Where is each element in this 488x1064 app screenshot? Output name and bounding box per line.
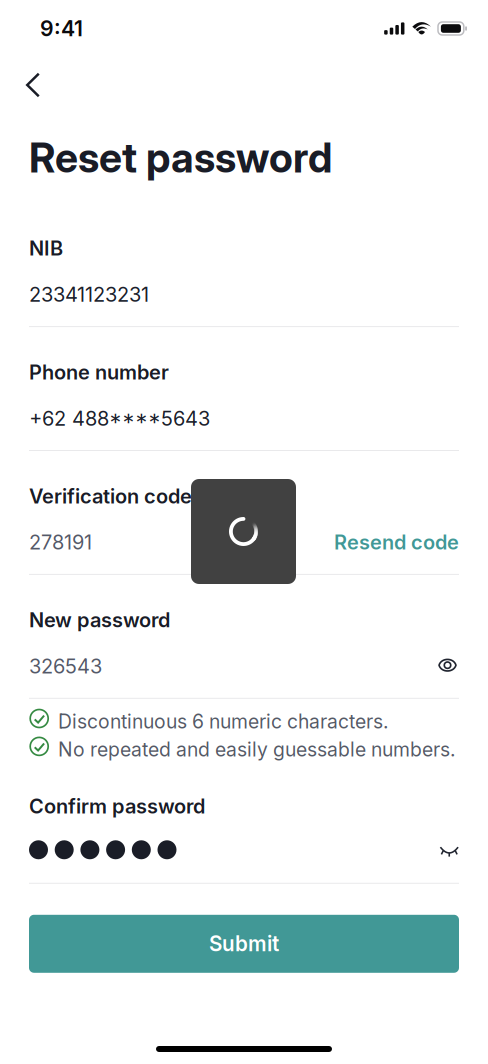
staticText: Reset password	[29, 133, 332, 182]
staticText: New password	[29, 608, 170, 632]
staticText: +62 488****5643	[29, 406, 210, 430]
staticText: 326543	[29, 654, 102, 678]
staticText: 23341123231	[29, 282, 149, 307]
staticText: Phone number	[29, 360, 169, 384]
button[interactable]: Show password	[440, 659, 459, 673]
staticText: 9:41	[40, 16, 83, 41]
button[interactable]: Resend code	[334, 530, 459, 554]
staticText: No repeated and easily guessable numbers…	[58, 738, 456, 761]
button[interactable]: Submit	[29, 915, 459, 973]
staticText: 278191	[29, 530, 92, 554]
button[interactable]: Hide password	[439, 844, 459, 855]
staticText: Confirm password	[29, 794, 205, 818]
staticText: Submit	[209, 931, 279, 956]
button[interactable]: Back	[11, 63, 55, 107]
staticText: Verification code	[29, 484, 192, 508]
staticText: Resend code	[334, 530, 459, 554]
staticText: Discontinuous 6 numeric characters.	[58, 710, 389, 733]
staticText: NIB	[29, 236, 63, 260]
